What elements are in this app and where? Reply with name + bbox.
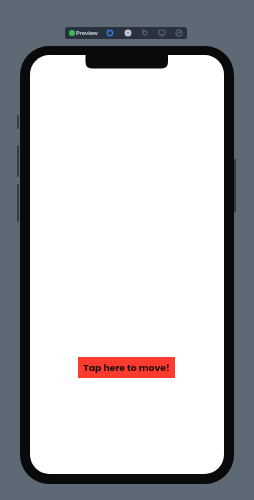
button[interactable]: Preview (68, 27, 100, 39)
button[interactable]: Device preview (156, 27, 168, 39)
button[interactable]: Run preview (122, 27, 134, 39)
button[interactable]: Copy preview (173, 27, 185, 39)
button[interactable]: Animation preview (139, 27, 151, 39)
staticText: Tap here to move! (83, 361, 170, 374)
button[interactable]: Tap here to move! (78, 357, 175, 378)
staticText: Preview (76, 29, 98, 37)
button[interactable]: Interactive preview (104, 27, 116, 39)
